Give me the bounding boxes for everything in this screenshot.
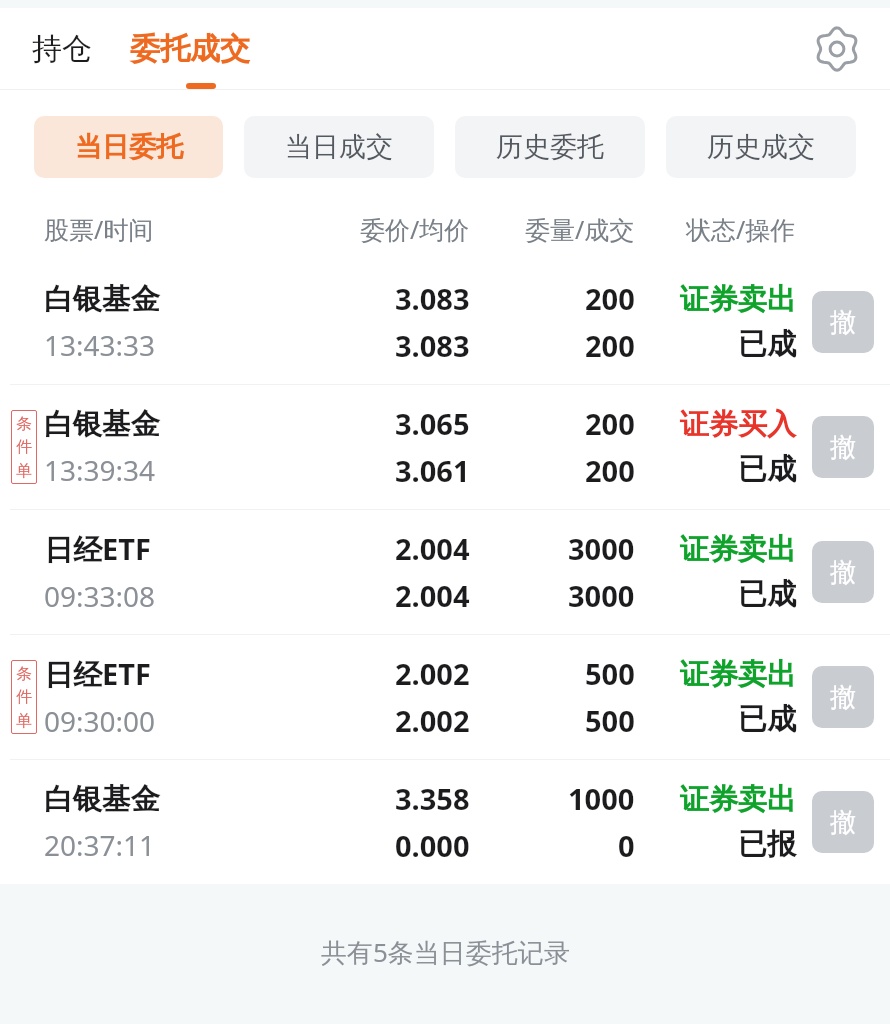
staticText: 当日成交 (285, 130, 393, 164)
staticText: 13:43:33 (44, 326, 156, 364)
staticText: 白银基金 (44, 781, 160, 818)
staticText: 共有5条当日委托记录 (321, 934, 570, 970)
staticText: 0.000 (395, 826, 470, 865)
staticText: 证券买入 (680, 406, 796, 443)
button[interactable]: 委托成交 (120, 22, 260, 76)
staticText: 2.002 (395, 701, 470, 740)
staticText: 撤 (830, 681, 856, 714)
button[interactable]: 当日成交 (244, 116, 434, 178)
button[interactable]: Settings (812, 24, 862, 74)
staticText: 0 (618, 826, 635, 865)
staticText: 3.083 (395, 326, 470, 365)
staticText: 股票/时间 (44, 212, 154, 246)
staticText: 09:33:08 (44, 577, 156, 615)
button[interactable]: 撤 (812, 291, 874, 353)
staticText: 13:39:34 (44, 451, 156, 489)
staticText: 状态/操作 (686, 212, 796, 246)
staticText: 历史委托 (496, 130, 604, 164)
staticText: 撤 (830, 431, 856, 464)
button[interactable]: 撤 (812, 791, 874, 853)
staticText: 委托成交 (130, 30, 250, 68)
staticText: 撤 (830, 806, 856, 839)
button[interactable]: 撤 (812, 541, 874, 603)
staticText: 已成 (738, 576, 796, 613)
staticText: 3000 (568, 576, 635, 615)
staticText: 200 (585, 404, 635, 443)
staticText: 20:37:11 (44, 826, 156, 864)
staticText: 200 (585, 451, 635, 490)
staticText: 证券卖出 (680, 781, 796, 818)
staticText: 2.004 (395, 529, 470, 568)
staticText: 3.061 (395, 451, 470, 490)
button[interactable]: 当日委托 (34, 116, 223, 178)
staticText: 500 (585, 701, 635, 740)
staticText: 3.083 (395, 279, 470, 318)
button[interactable]: 历史委托 (455, 116, 645, 178)
staticText: 证券卖出 (680, 531, 796, 568)
staticText: 单 (16, 711, 32, 731)
button[interactable]: 日经ETF (0, 635, 890, 759)
button[interactable]: 撤 (812, 666, 874, 728)
staticText: 日经ETF (44, 529, 151, 569)
staticText: 委价/均价 (360, 212, 470, 246)
staticText: 历史成交 (707, 130, 815, 164)
staticText: 2.002 (395, 654, 470, 693)
staticText: 已报 (738, 826, 796, 863)
button[interactable]: 白银基金 (0, 760, 890, 884)
button[interactable]: 日经ETF (0, 510, 890, 634)
staticText: 委量/成交 (525, 212, 635, 246)
staticText: 已成 (738, 326, 796, 363)
staticText: 09:30:00 (44, 702, 156, 740)
staticText: 证券卖出 (680, 656, 796, 693)
staticText: 件 (16, 437, 32, 457)
button[interactable]: 撤 (812, 416, 874, 478)
staticText: 2.004 (395, 576, 470, 615)
staticText: 已成 (738, 701, 796, 738)
staticText: 200 (585, 326, 635, 365)
button[interactable]: 持仓 (22, 22, 102, 76)
staticText: 3.065 (395, 404, 470, 443)
staticText: 件 (16, 687, 32, 707)
staticText: 3000 (568, 529, 635, 568)
staticText: 已成 (738, 451, 796, 488)
staticText: 证券卖出 (680, 281, 796, 318)
staticText: 白银基金 (44, 281, 160, 318)
staticText: 当日委托 (75, 130, 183, 164)
staticText: 撤 (830, 556, 856, 589)
staticText: 200 (585, 279, 635, 318)
staticText: 1000 (568, 779, 635, 818)
staticText: 单 (16, 461, 32, 481)
button[interactable]: 白银基金 (0, 385, 890, 509)
staticText: 撤 (830, 306, 856, 339)
staticText: 条 (16, 414, 32, 434)
staticText: 日经ETF (44, 654, 151, 694)
staticText: 3.358 (395, 779, 470, 818)
staticText: 白银基金 (44, 406, 160, 443)
button[interactable]: 历史成交 (666, 116, 856, 178)
button[interactable]: 白银基金 (0, 260, 890, 384)
staticText: 500 (585, 654, 635, 693)
staticText: 持仓 (32, 30, 92, 68)
staticText: 条 (16, 664, 32, 684)
